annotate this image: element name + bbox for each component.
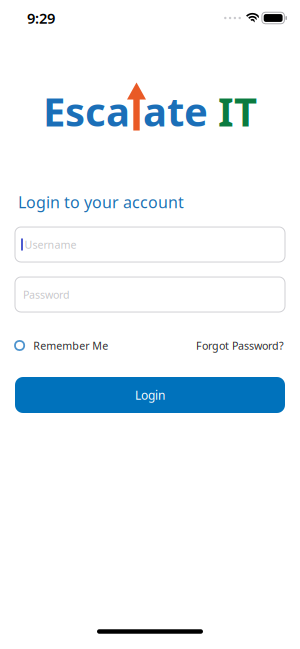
button[interactable]: Password [15,277,285,312]
staticText: Remember Me [33,338,108,353]
button[interactable]: Login [15,377,285,413]
staticText: Username [24,237,76,252]
button[interactable]: Username [15,227,285,262]
staticText: ate [143,84,208,137]
staticText: Forgot Password? [196,338,284,353]
staticText: Login to your account [18,191,184,213]
staticText: Esca [43,84,130,137]
staticText: Password [23,287,70,302]
staticText: 9:29 [27,8,55,28]
staticText: IT [208,84,257,137]
button[interactable]: Remember Me [15,338,108,353]
button[interactable]: Forgot Password? [196,338,284,353]
staticText: Login [135,387,165,403]
